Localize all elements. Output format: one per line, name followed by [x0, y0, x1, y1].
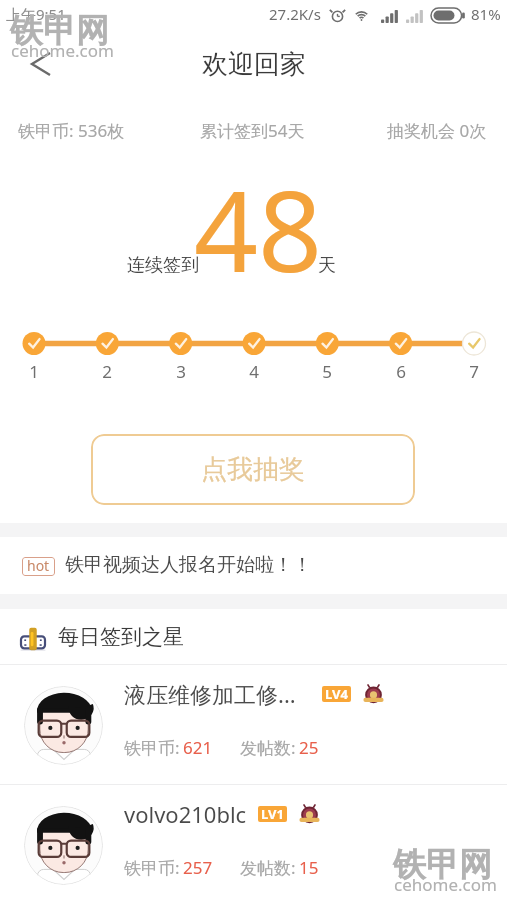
staticText: 81% [471, 4, 501, 24]
staticText: 每日签到之星 [58, 624, 184, 650]
staticText: 铁甲视频达人报名开始啦！！ [65, 553, 312, 577]
staticText: 257 [183, 856, 213, 879]
staticText: 6 [396, 360, 406, 383]
staticText: 铁甲网 [393, 844, 492, 886]
staticText: 累计签到54天 [200, 119, 305, 142]
staticText: 2 [102, 360, 112, 383]
staticText: 1 [29, 360, 39, 383]
staticText: 发帖数: [240, 736, 296, 759]
staticText: cehome.com [11, 39, 114, 62]
staticText: 5 [322, 360, 332, 383]
staticText: 铁甲币: [124, 736, 180, 759]
staticText: 4 [249, 360, 259, 383]
staticText: volvo210blc [124, 799, 247, 829]
staticText: 25 [299, 736, 319, 759]
staticText: LV1 [261, 806, 284, 821]
staticText: 621 [183, 736, 213, 759]
button[interactable]: hot [0, 537, 507, 594]
staticText: 铁甲币: 536枚 [18, 119, 125, 142]
staticText: 连续签到 [127, 254, 199, 277]
staticText: hot [27, 557, 50, 575]
button[interactable]: 点我抽奖 [91, 434, 415, 505]
staticText: 欢迎回家 [202, 48, 306, 81]
staticText: 铁甲网 [10, 10, 109, 52]
staticText: 天 [318, 254, 336, 277]
staticText: 液压维修加工修... [124, 679, 296, 709]
staticText: 15 [299, 856, 319, 879]
staticText: 7 [469, 360, 479, 383]
staticText: 点我抽奖 [201, 453, 305, 486]
staticText: 抽奖机会 0次 [387, 119, 487, 142]
staticText: 48 [194, 152, 323, 292]
staticText: 3 [176, 360, 186, 383]
button[interactable]: Back [17, 40, 65, 88]
staticText: 铁甲币: [124, 856, 180, 879]
staticText: 27.2K/s [269, 4, 321, 24]
staticText: cehome.com [394, 873, 497, 896]
button[interactable]: 液压维修加工修... [0, 665, 507, 785]
staticText: LV4 [325, 686, 348, 701]
button[interactable]: volvo210blc [0, 785, 507, 900]
staticText: 上午9:51 [6, 4, 66, 24]
staticText: 发帖数: [240, 856, 296, 879]
